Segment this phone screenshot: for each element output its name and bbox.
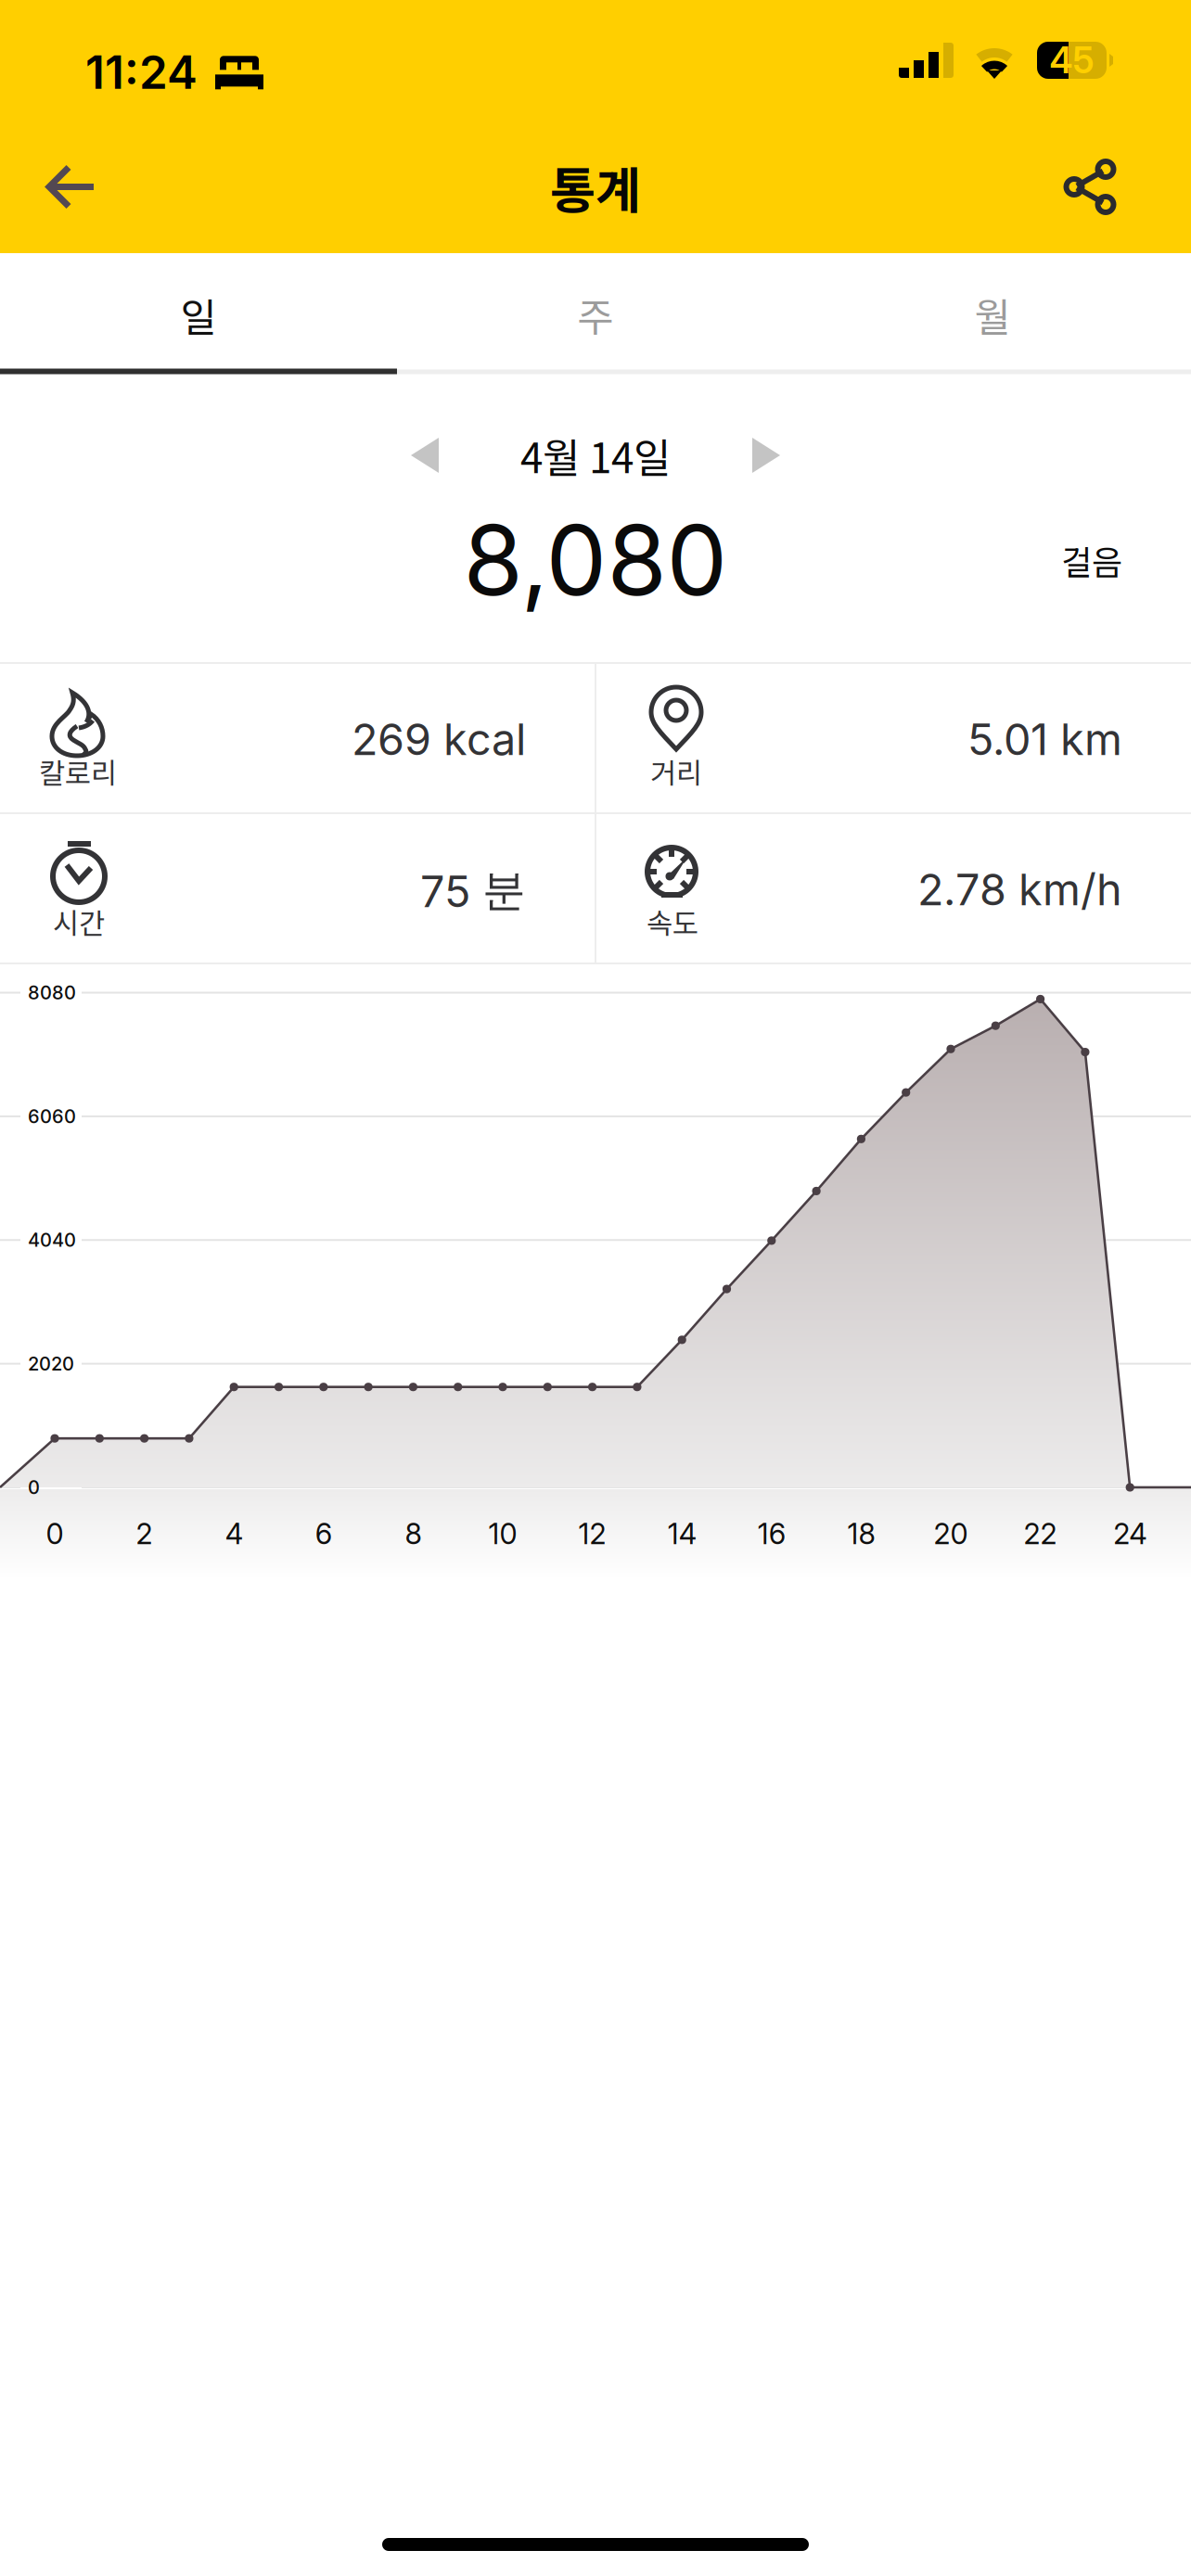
staticText: 4월 14일 xyxy=(520,426,671,485)
staticText: 12 xyxy=(578,1516,606,1551)
staticText: 18 xyxy=(847,1516,875,1551)
button[interactable]: Previous day xyxy=(381,423,468,488)
button[interactable]: 일 xyxy=(0,255,397,374)
staticText: 0 xyxy=(28,1476,40,1499)
staticText: 시간 xyxy=(53,901,105,942)
staticText: 8,080 xyxy=(463,502,728,618)
staticText: 칼로리 xyxy=(39,751,117,792)
staticText: 속도 xyxy=(647,901,698,942)
staticText: 거리 xyxy=(650,751,702,792)
staticText: 4 xyxy=(225,1516,243,1551)
staticText: 주 xyxy=(577,286,614,343)
staticText: 269 kcal xyxy=(352,713,526,765)
staticText: 4040 xyxy=(28,1229,76,1251)
staticText: 2020 xyxy=(28,1352,74,1375)
staticText: 6060 xyxy=(28,1105,76,1128)
staticText: 24 xyxy=(1113,1516,1147,1551)
button[interactable]: 시간 xyxy=(0,814,595,963)
staticText: 45 xyxy=(1050,39,1094,82)
staticText: 22 xyxy=(1024,1516,1057,1551)
staticText: 5.01 km xyxy=(967,713,1122,765)
staticText: 11:24 xyxy=(85,45,198,100)
staticText: 20 xyxy=(934,1516,968,1551)
staticText: 2.78 km/h xyxy=(917,863,1122,916)
button[interactable]: 거리 xyxy=(596,664,1191,812)
staticText: 10 xyxy=(488,1516,517,1551)
staticText: 6 xyxy=(315,1516,332,1551)
button[interactable]: Next day xyxy=(723,423,810,488)
staticText: 2 xyxy=(136,1516,153,1551)
staticText: 걸음 xyxy=(1061,536,1122,584)
button[interactable]: 칼로리 xyxy=(0,664,595,812)
button[interactable]: 월 xyxy=(794,255,1191,374)
staticText: 일 xyxy=(180,286,217,343)
staticText: 0 xyxy=(46,1516,64,1551)
button[interactable]: 속도 xyxy=(596,814,1191,963)
staticText: 16 xyxy=(758,1516,785,1551)
staticText: 월 xyxy=(974,286,1011,343)
staticText: 8 xyxy=(405,1516,421,1551)
staticText: 통계 xyxy=(550,151,641,223)
button[interactable]: 주 xyxy=(397,255,794,374)
button[interactable]: Share xyxy=(1039,121,1141,253)
staticText: 8080 xyxy=(28,981,76,1004)
staticText: 75 분 xyxy=(420,863,526,918)
staticText: 14 xyxy=(668,1516,696,1551)
button[interactable]: Back xyxy=(20,121,122,253)
